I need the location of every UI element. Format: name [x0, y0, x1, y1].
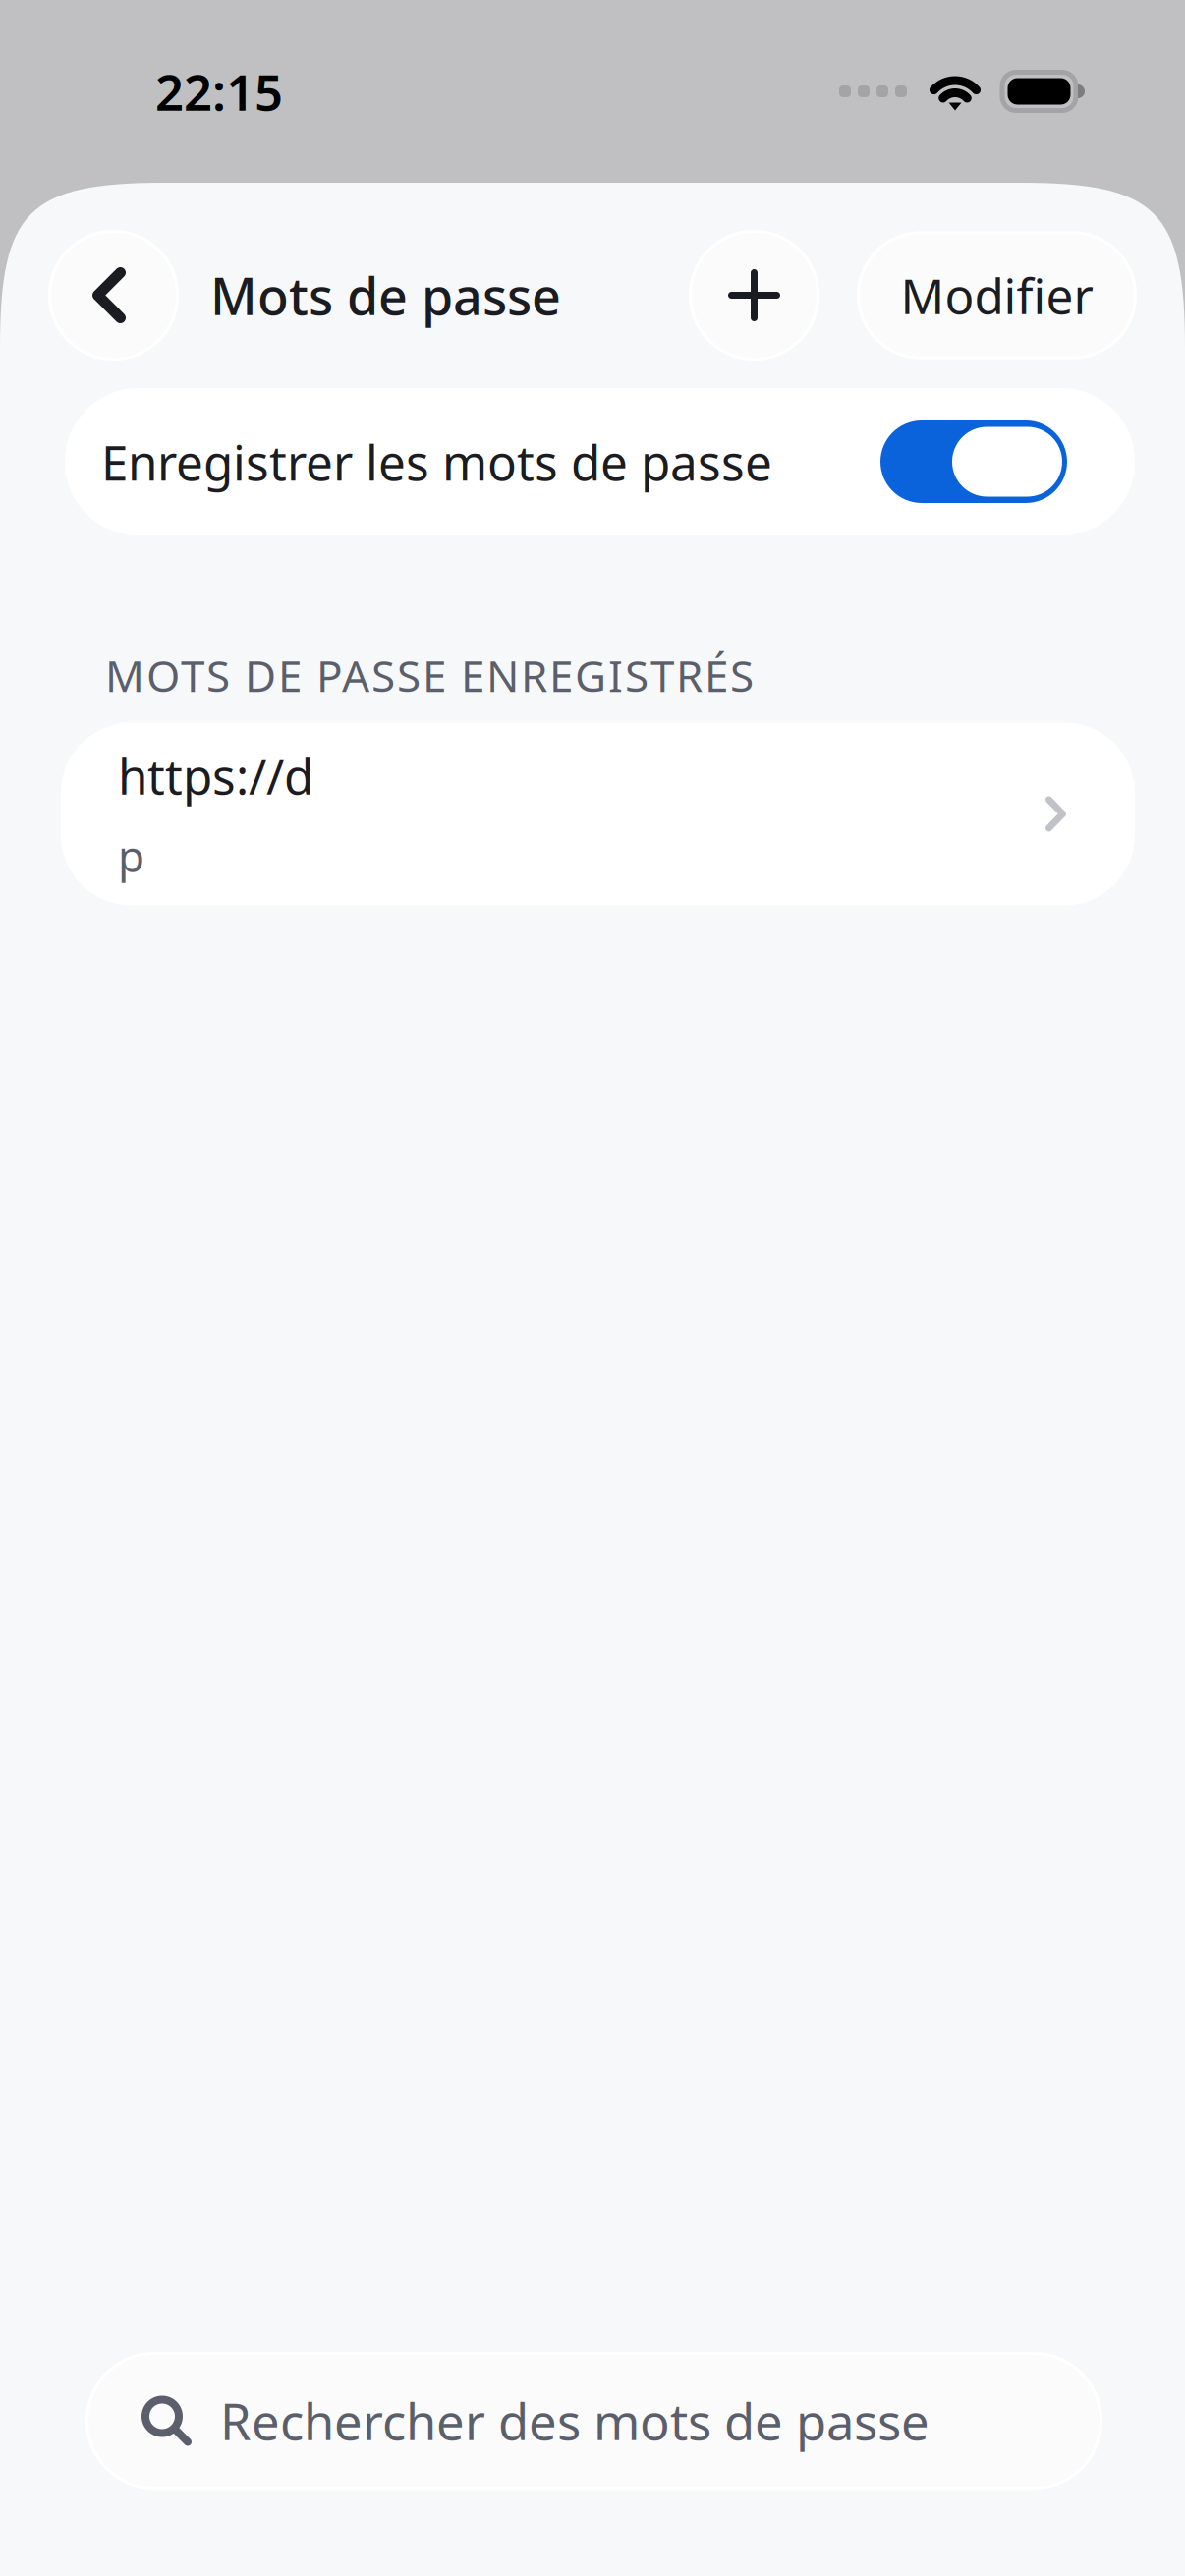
- staticText: Rechercher des mots de passe: [220, 2388, 930, 2454]
- staticText: MOTS DE PASSE ENREGISTRÉS: [105, 646, 754, 704]
- staticText: https://d: [118, 744, 313, 808]
- button[interactable]: https://d: [61, 722, 1135, 905]
- button[interactable]: Enregistrer les mots de passe: [65, 388, 1135, 535]
- staticText: Modifier: [901, 263, 1093, 327]
- button[interactable]: Rechercher des mots de passe: [85, 2352, 1102, 2490]
- staticText: Mots de passe: [210, 261, 561, 329]
- button[interactable]: Retour: [48, 230, 179, 361]
- button[interactable]: Ajouter un mot de passe: [689, 230, 819, 361]
- staticText: p: [118, 827, 144, 884]
- staticText: 22:15: [155, 58, 283, 124]
- button[interactable]: Modifier: [857, 231, 1137, 359]
- staticText: Enregistrer les mots de passe: [101, 430, 772, 494]
